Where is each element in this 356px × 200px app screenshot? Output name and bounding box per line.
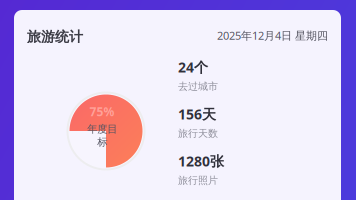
staticText: 1280张 <box>178 151 224 171</box>
staticText: 年度目标 <box>87 123 117 149</box>
staticText: 旅游统计 <box>27 28 83 46</box>
staticText: 24个 <box>178 57 208 77</box>
button[interactable]: 156天 <box>178 104 318 151</box>
staticText: 2025年12月4日 星期四 <box>217 28 328 43</box>
staticText: 旅行照片 <box>178 174 218 187</box>
staticText: 旅行天数 <box>178 127 218 140</box>
button[interactable]: 24个 <box>178 57 318 104</box>
staticText: 去过城市 <box>178 80 218 93</box>
staticText: 75% <box>89 103 114 120</box>
button[interactable]: 1280张 <box>178 151 318 198</box>
staticText: 156天 <box>178 104 216 124</box>
